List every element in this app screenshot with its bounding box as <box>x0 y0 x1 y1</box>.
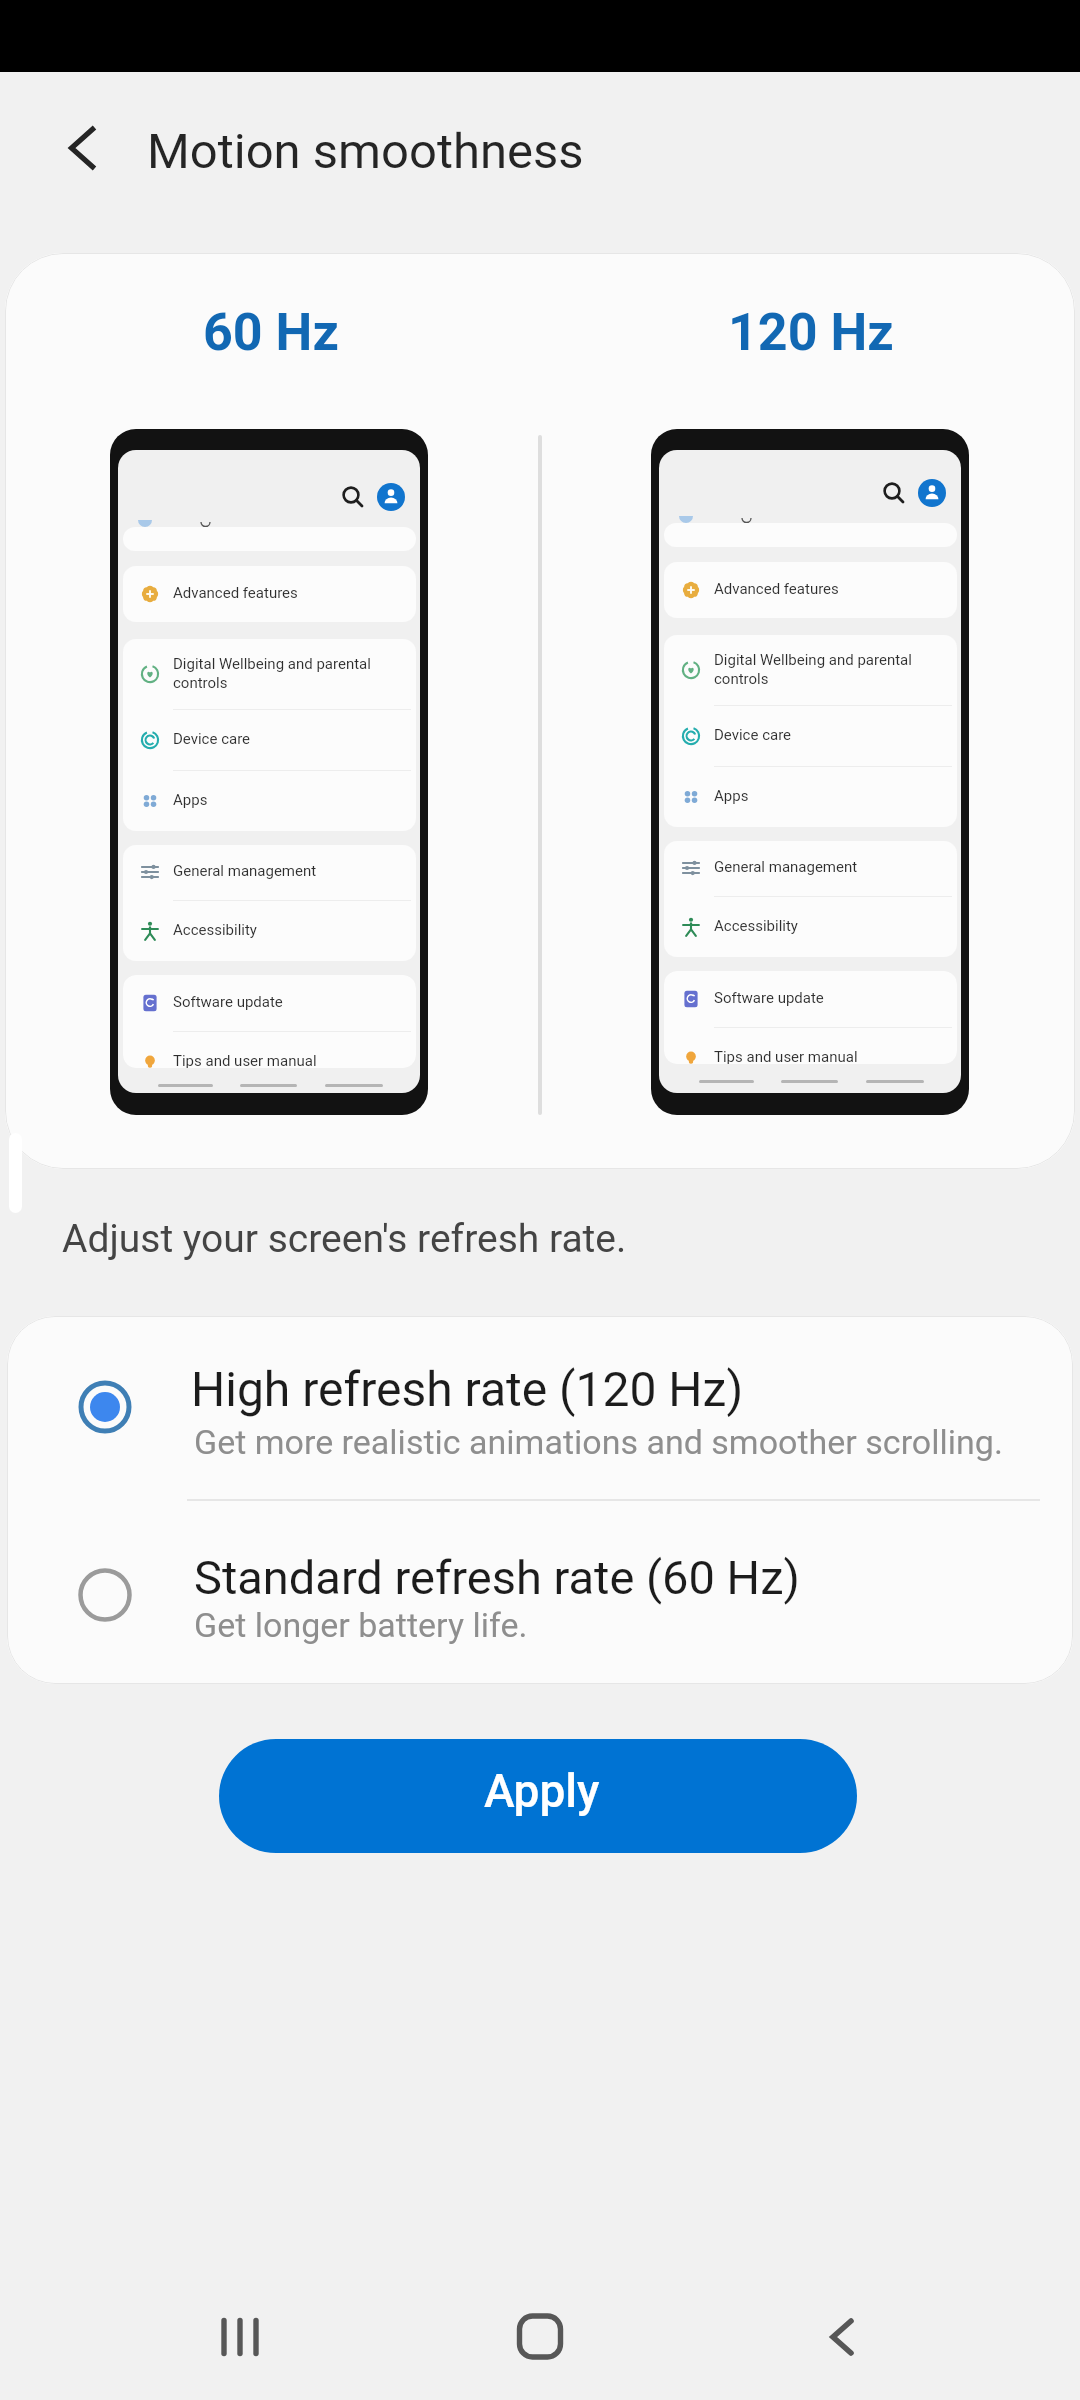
button[interactable]: Tips and user manual <box>664 1028 957 1064</box>
button[interactable]: Apply <box>219 1739 857 1853</box>
button[interactable]: Software update <box>123 975 416 1031</box>
staticText: Accessibility <box>173 921 257 939</box>
button[interactable]: Software update <box>664 971 957 1027</box>
button[interactable]: Home <box>470 2266 610 2400</box>
staticText: Motion smoothness <box>147 123 584 180</box>
staticText: Apps <box>173 791 208 809</box>
button[interactable]: Tips and user manual <box>123 1032 416 1068</box>
staticText: Apply <box>484 1764 600 1818</box>
staticText: Software update <box>714 989 824 1007</box>
staticText: Standard refresh rate (60 Hz) <box>194 1550 800 1605</box>
staticText: General management <box>714 858 858 876</box>
button[interactable]: Navigate up <box>28 93 138 203</box>
staticText: Digital Wellbeing and parental controls <box>173 655 371 692</box>
staticText: Digital Wellbeing and parental controls <box>714 651 912 688</box>
button[interactable]: Standard refresh rate (60 Hz) <box>7 1501 1073 1684</box>
button[interactable]: Device care <box>123 710 416 770</box>
button[interactable]: Accessibility <box>664 897 957 957</box>
button[interactable]: Apps <box>123 771 416 831</box>
button[interactable]: Accessibility <box>123 901 416 961</box>
staticText: 120 Hz <box>728 302 894 363</box>
staticText: Adjust your screen's refresh rate. <box>62 1216 627 1262</box>
staticText: Device care <box>714 726 792 744</box>
button[interactable]: Advanced features <box>664 562 957 618</box>
staticText: Device care <box>173 730 251 748</box>
button[interactable]: Back <box>772 2267 912 2400</box>
staticText: Advanced features <box>714 580 839 598</box>
staticText: Accessibility <box>714 917 798 935</box>
button[interactable]: Recent apps <box>170 2267 310 2400</box>
button[interactable]: Advanced features <box>123 566 416 622</box>
staticText: Software update <box>173 993 283 1011</box>
button[interactable]: Apps <box>664 767 957 827</box>
staticText: Advanced features <box>173 584 298 602</box>
button[interactable]: High refresh rate (120 Hz) <box>7 1316 1073 1499</box>
staticText: General management <box>173 862 317 880</box>
staticText: High refresh rate (120 Hz) <box>191 1361 744 1417</box>
staticText: 60 Hz <box>203 302 339 363</box>
button[interactable]: Digital Wellbeing and parental controls <box>664 635 957 705</box>
staticText: Apps <box>714 787 749 805</box>
staticText: Tips and user manual <box>714 1048 858 1064</box>
button[interactable]: General management <box>123 845 416 900</box>
staticText: Get longer battery life. <box>194 1605 528 1645</box>
staticText: Tips and user manual <box>173 1052 317 1068</box>
button[interactable]: General management <box>664 841 957 896</box>
staticText: Get more realistic animations and smooth… <box>194 1422 1003 1462</box>
button[interactable]: Digital Wellbeing and parental controls <box>123 639 416 709</box>
button[interactable]: Device care <box>664 706 957 766</box>
